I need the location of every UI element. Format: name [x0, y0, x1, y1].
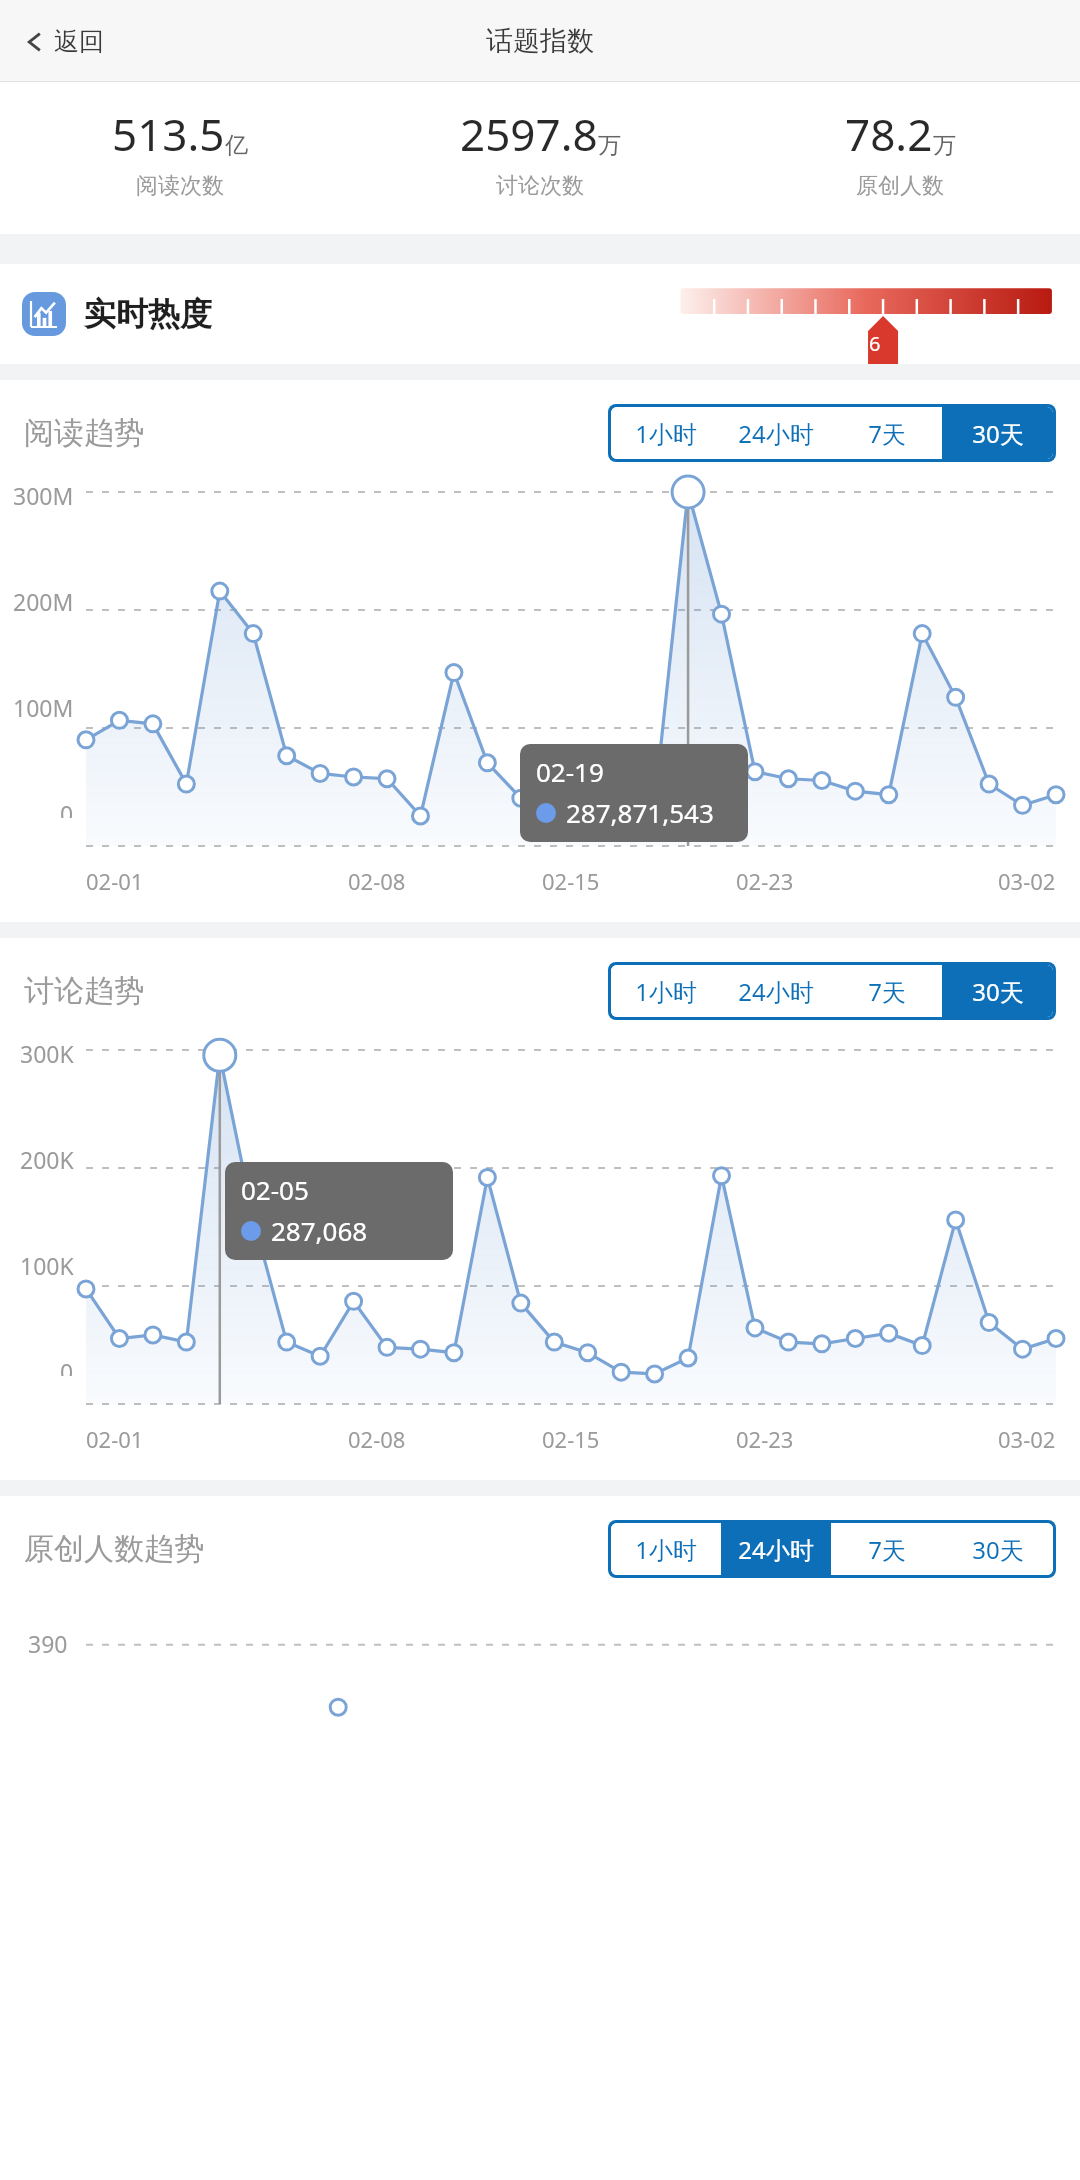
staticText: 阅读次数 [136, 172, 224, 200]
staticText: 原创人数 [856, 172, 944, 200]
staticText: 原创人数趋势 [24, 1530, 204, 1568]
staticText: 287,871,543 [566, 795, 714, 830]
staticText: 2597.8 [460, 104, 598, 164]
button[interactable]: 30天 [942, 1523, 1053, 1575]
staticText: 200M [13, 586, 74, 617]
staticText: 话题指数 [486, 24, 594, 58]
staticText: 1小时 [635, 1533, 697, 1566]
button[interactable]: 7天 [831, 407, 942, 459]
staticText: 78.2 [845, 104, 933, 164]
other: Back [24, 31, 46, 53]
button[interactable]: 7天 [831, 1523, 942, 1575]
staticText: 1小时 [635, 975, 697, 1008]
staticText: 02-08 [348, 866, 406, 896]
button[interactable]: 7天 [831, 965, 942, 1017]
button[interactable]: 24小时 [721, 965, 831, 1017]
staticText: 7天 [868, 1533, 906, 1566]
button[interactable]: 24小时 [721, 1523, 831, 1575]
button[interactable]: 24小时 [721, 407, 831, 459]
staticText: 30天 [972, 975, 1024, 1008]
staticText: 02-23 [736, 1424, 794, 1454]
staticText: 02-08 [348, 1424, 406, 1454]
staticText: 24小时 [738, 1533, 814, 1566]
staticText: 7天 [868, 417, 906, 450]
staticText: 100K [20, 1250, 74, 1281]
staticText: 阅读趋势 [24, 414, 144, 452]
staticText: 200K [20, 1144, 74, 1175]
staticText: 万 [598, 131, 621, 160]
staticText: 02-01 [86, 866, 144, 896]
staticText: 300M [13, 480, 74, 511]
staticText: 亿 [225, 131, 248, 160]
staticText: 30天 [972, 1533, 1024, 1566]
button[interactable]: Back [18, 20, 110, 63]
button[interactable]: 30天 [942, 407, 1053, 459]
staticText: 02-15 [542, 1424, 600, 1454]
staticText: 02-23 [736, 866, 794, 896]
staticText: 讨论次数 [496, 172, 584, 200]
staticText: 100M [13, 692, 74, 723]
button[interactable]: 30天 [942, 965, 1053, 1017]
staticText: 02-19 [536, 754, 604, 789]
button[interactable]: 1小时 [611, 407, 721, 459]
staticText: 24小时 [738, 417, 814, 450]
staticText: 24小时 [738, 975, 814, 1008]
button[interactable]: 1小时 [611, 965, 721, 1017]
staticText: 实时热度 [84, 294, 212, 334]
staticText: 7天 [868, 975, 906, 1008]
staticText: 返回 [54, 26, 104, 57]
staticText: 02-15 [542, 866, 600, 896]
staticText: 1小时 [635, 417, 697, 450]
staticText: 0 [60, 1356, 74, 1376]
staticText: 0 [60, 798, 74, 818]
staticText: 6 [869, 330, 881, 357]
button[interactable]: 1小时 [611, 1523, 721, 1575]
button[interactable]: 实时热度 [22, 292, 212, 336]
staticText: 讨论趋势 [24, 972, 144, 1010]
staticText: 513.5 [112, 104, 225, 164]
staticText: 02-05 [241, 1172, 309, 1207]
staticText: 03-02 [998, 1424, 1056, 1454]
staticText: 287,068 [271, 1213, 368, 1248]
staticText: 万 [933, 131, 956, 160]
staticText: 03-02 [998, 866, 1056, 896]
staticText: 300K [20, 1038, 74, 1069]
staticText: 390 [28, 1628, 68, 1659]
staticText: 02-01 [86, 1424, 144, 1454]
staticText: 30天 [972, 417, 1024, 450]
